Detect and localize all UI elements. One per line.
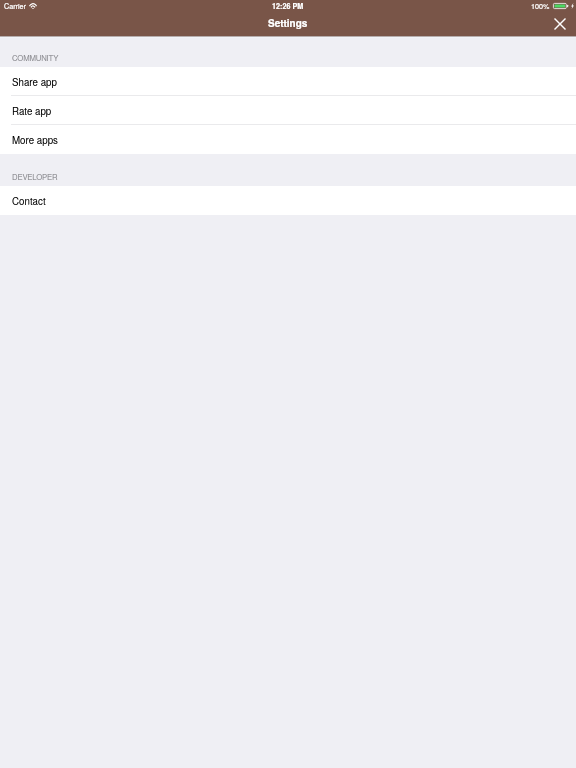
staticText: Contact <box>12 194 46 208</box>
button[interactable]: Close <box>549 13 571 35</box>
staticText: COMMUNITY <box>12 52 59 63</box>
button[interactable]: More apps <box>0 125 576 154</box>
staticText: Rate app <box>12 104 52 118</box>
staticText: Share app <box>12 75 57 89</box>
button[interactable]: Share app <box>0 67 576 96</box>
button[interactable]: Rate app <box>0 96 576 125</box>
staticText: 100% <box>531 1 550 11</box>
staticText: 12:26 PM <box>272 1 304 11</box>
staticText: Settings <box>268 16 308 30</box>
button[interactable]: Contact <box>0 186 576 215</box>
staticText: More apps <box>12 133 58 147</box>
staticText: DEVELOPER <box>12 171 58 182</box>
staticText: Carrier <box>4 1 26 11</box>
